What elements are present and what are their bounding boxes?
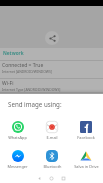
button[interactable]: Wi-Fi xyxy=(0,79,103,92)
staticText: Facebook xyxy=(77,135,95,140)
staticText: Send image using: xyxy=(8,100,62,108)
button[interactable]: Share xyxy=(45,31,59,45)
staticText: Messenger xyxy=(7,164,28,169)
staticText: Internet Type [ANDROID/WINDOWS] xyxy=(2,87,61,92)
staticText: Salva in Drive xyxy=(74,164,99,169)
staticText: Network xyxy=(3,50,24,56)
staticText: Wi-Fi xyxy=(2,80,14,87)
button[interactable]: Home xyxy=(49,176,54,181)
button[interactable]: Salva in Drive xyxy=(69,150,103,169)
staticText: WhatsApp xyxy=(8,135,27,140)
staticText: Internet [ANDROID/WINDOWS] xyxy=(2,69,52,74)
button[interactable]: E-mail xyxy=(35,121,69,140)
button[interactable]: Back xyxy=(37,176,42,181)
button[interactable]: Connected = True xyxy=(0,61,103,78)
button[interactable]: Facebook xyxy=(69,121,103,140)
staticText: Connected = True xyxy=(2,62,44,69)
button[interactable]: WhatsApp xyxy=(0,121,35,140)
staticText: E-mail xyxy=(46,135,58,140)
button[interactable]: Messenger xyxy=(0,150,35,169)
staticText: Bluetooth xyxy=(43,164,62,169)
button[interactable]: Bluetooth xyxy=(35,150,69,169)
button[interactable]: Recents xyxy=(61,176,66,181)
